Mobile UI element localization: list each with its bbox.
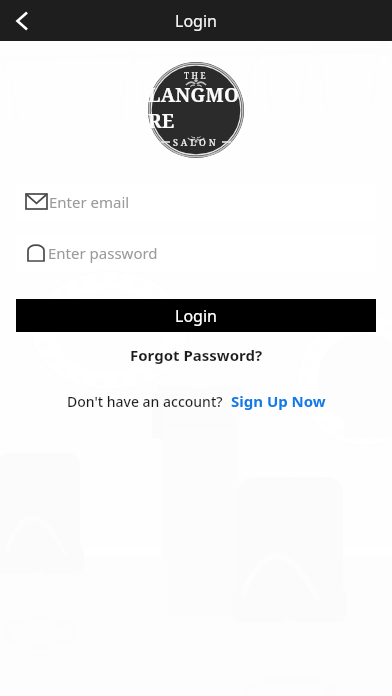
staticText: Enter password bbox=[48, 243, 158, 263]
button[interactable]: Forgot Password? bbox=[0, 341, 392, 369]
staticText: Forgot Password? bbox=[130, 345, 263, 365]
button[interactable]: Enter password bbox=[16, 234, 376, 271]
staticText: Sign Up Now bbox=[231, 391, 326, 411]
staticText: LANGMORE bbox=[148, 82, 244, 134]
button[interactable]: Sign Up Now bbox=[231, 389, 326, 413]
button[interactable]: Back bbox=[0, 0, 44, 41]
staticText: Login bbox=[175, 305, 217, 327]
staticText: SALON bbox=[173, 136, 219, 148]
button[interactable]: Enter email bbox=[16, 183, 376, 220]
staticText: Login bbox=[175, 10, 217, 32]
staticText: Enter email bbox=[49, 192, 130, 212]
staticText: THE bbox=[184, 70, 209, 81]
button[interactable]: Login bbox=[16, 299, 376, 332]
staticText: Don't have an account? bbox=[67, 392, 223, 411]
